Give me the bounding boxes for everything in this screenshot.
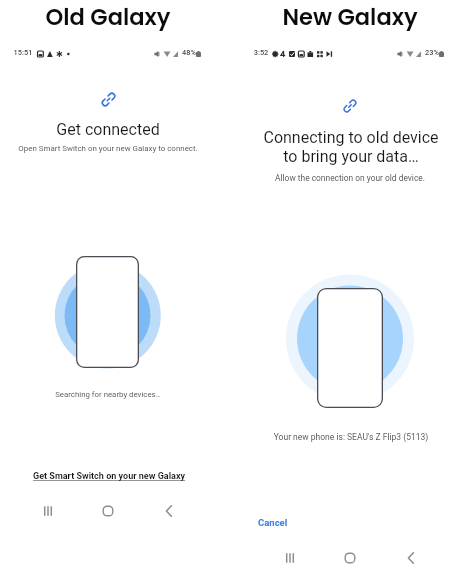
- staticText: Open Smart Switch on your new Galaxy to …: [0, 144, 223, 158]
- staticText: Allow the connection on your old device.: [245, 173, 455, 187]
- button[interactable]: Back: [400, 547, 422, 569]
- staticText: Old Galaxy: [3, 1, 213, 35]
- staticText: Searching for nearby devices…: [8, 390, 208, 404]
- staticText: Connecting to old device to bring your d…: [236, 128, 466, 174]
- staticText: 3:52: [246, 48, 276, 60]
- staticText: Your new phone is: SEAU's Z Flip3 (5113): [241, 432, 461, 446]
- staticText: Get connected: [8, 120, 208, 144]
- staticText: Get Smart Switch on your new Galaxy: [33, 471, 186, 482]
- staticText: Cancel: [258, 517, 288, 528]
- button[interactable]: Recents: [279, 547, 301, 569]
- staticText: 15:51: [8, 48, 38, 60]
- staticText: New Galaxy: [245, 1, 455, 35]
- button[interactable]: Home: [97, 500, 119, 522]
- button[interactable]: Home: [339, 547, 361, 569]
- button[interactable]: Back: [158, 500, 180, 522]
- staticText: 23%: [420, 48, 444, 60]
- button[interactable]: Get Smart Switch on your new Galaxy: [29, 467, 189, 485]
- button[interactable]: Recents: [37, 500, 59, 522]
- staticText: 48%: [177, 48, 201, 60]
- button[interactable]: Cancel: [255, 513, 291, 531]
